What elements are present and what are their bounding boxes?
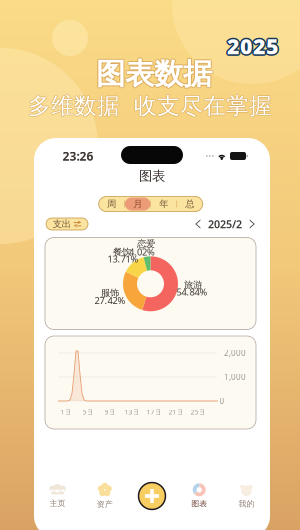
staticText: 支出 (53, 218, 71, 230)
staticText: 2025 (226, 33, 278, 61)
button[interactable]: 年 (151, 197, 176, 210)
staticText: 1日 (60, 408, 71, 416)
staticText: 2025 (228, 33, 280, 61)
staticText: 图表 (191, 499, 207, 509)
staticText: 5日 (82, 408, 93, 416)
staticText: 图表数据 (95, 56, 211, 92)
staticText: 2,000 (224, 348, 246, 358)
staticText: 图表数据 (96, 57, 212, 93)
staticText: 图表数据 (95, 55, 211, 91)
staticText: 年 (159, 198, 168, 210)
button[interactable]: 月 (125, 197, 150, 210)
staticText: 多维数据 收支尽在掌握 (28, 92, 272, 119)
staticText: 13日 (124, 408, 139, 416)
staticText: 17日 (146, 408, 161, 416)
staticText: 图表数据 (96, 56, 212, 92)
staticText: 图表 (139, 168, 165, 184)
staticText: 2025 (225, 32, 277, 60)
staticText: 2025 (228, 31, 280, 59)
staticText: 2025/2 (208, 217, 242, 231)
staticText: 恋爱 (137, 238, 155, 250)
button[interactable]: 周 (99, 197, 124, 210)
staticText: 周 (107, 198, 116, 210)
staticText: 2025 (227, 32, 279, 60)
button[interactable]: 图表 (176, 472, 223, 520)
staticText: 多维数据 收支尽在掌握 (27, 92, 271, 120)
staticText: 服饰 (101, 287, 119, 299)
button[interactable]: Previous month (193, 217, 204, 230)
staticText: 旅游 (184, 279, 202, 291)
staticText: 主页 (50, 498, 66, 508)
staticText: 1,000 (224, 372, 246, 382)
staticText: 25日 (190, 408, 205, 416)
staticText: 2025 (226, 31, 278, 59)
staticText: 4.02% (129, 246, 155, 258)
button[interactable]: 支出 (46, 218, 88, 230)
staticText: 多维数据 收支尽在掌握 (27, 93, 271, 120)
staticText: 2025 (227, 33, 279, 62)
staticText: 资产 (97, 499, 113, 509)
staticText: 多维数据 收支尽在掌握 (27, 92, 271, 119)
staticText: 0 (219, 396, 224, 406)
staticText: 图表数据 (96, 55, 212, 91)
staticText: 月 (133, 198, 142, 210)
staticText: 我的 (238, 499, 254, 509)
staticText: 多维数据 收支尽在掌握 (28, 93, 272, 120)
button[interactable]: 总 (177, 197, 203, 210)
staticText: 2025 (228, 32, 280, 60)
button[interactable]: 我的 (223, 472, 270, 520)
staticText: 多维数据 收支尽在掌握 (28, 91, 272, 119)
staticText: 2025 (227, 30, 279, 59)
staticText: 21日 (168, 408, 183, 416)
staticText: 多维数据 收支尽在掌握 (28, 92, 272, 120)
staticText: 54.84% (176, 286, 207, 298)
staticText: 13.71% (107, 253, 138, 265)
button[interactable]: Next month (246, 217, 257, 230)
staticText: 图表数据 (97, 56, 213, 92)
staticText: 27.42% (94, 294, 125, 306)
button[interactable]: 资产 (81, 472, 128, 520)
staticText: 多维数据 收支尽在掌握 (28, 93, 272, 121)
staticText: 餐饮 (113, 246, 131, 258)
button[interactable]: 主页 (34, 472, 81, 520)
staticText: 图表数据 (97, 57, 213, 93)
staticText: 多维数据 收支尽在掌握 (29, 92, 273, 120)
button[interactable]: Add record (128, 472, 176, 520)
staticText: 总 (185, 198, 194, 210)
staticText: 9日 (104, 408, 115, 416)
staticText: 23:26 (62, 148, 93, 164)
staticText: 图表数据 (97, 55, 213, 91)
staticText: 图表数据 (95, 57, 211, 93)
